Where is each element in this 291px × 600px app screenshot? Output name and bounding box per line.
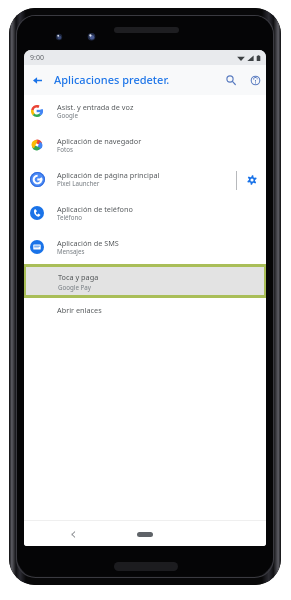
staticText: Google Pay	[58, 283, 91, 291]
button[interactable]: Search	[220, 69, 242, 91]
staticText: Aplicación de teléfono	[57, 204, 133, 214]
button[interactable]: Home	[131, 527, 159, 541]
staticText: Aplicación de SMS	[57, 238, 119, 248]
staticText: Mensajes	[57, 247, 85, 255]
button[interactable]: Back	[26, 69, 48, 91]
staticText: Aplicación de navegador	[57, 136, 142, 146]
staticText: Asist. y entrada de voz	[57, 102, 134, 112]
staticText: Teléfono	[57, 213, 83, 221]
button[interactable]: Aplicación de teléfono	[24, 197, 266, 231]
button[interactable]: Settings	[237, 163, 266, 197]
staticText: Toca y paga	[58, 272, 99, 282]
staticText: Fotos	[57, 145, 73, 153]
staticText: Google	[57, 111, 78, 119]
button[interactable]: Aplicación de página principal	[24, 163, 266, 197]
button[interactable]: Aplicación de SMS	[24, 231, 266, 265]
staticText: 9:00	[30, 53, 44, 63]
staticText: Aplicaciones predeter.	[54, 72, 170, 87]
staticText: Pixel Launcher	[57, 179, 100, 187]
staticText: Abrir enlaces	[57, 305, 102, 315]
button[interactable]: Toca y paga	[26, 267, 264, 295]
staticText: Aplicación de página principal	[57, 170, 160, 180]
button[interactable]: Aplicación de navegador	[24, 129, 266, 163]
button[interactable]: Abrir enlaces	[24, 298, 266, 331]
button[interactable]: Back	[63, 524, 83, 544]
button[interactable]: Asist. y entrada de voz	[24, 95, 266, 129]
button[interactable]: Help	[244, 69, 266, 91]
